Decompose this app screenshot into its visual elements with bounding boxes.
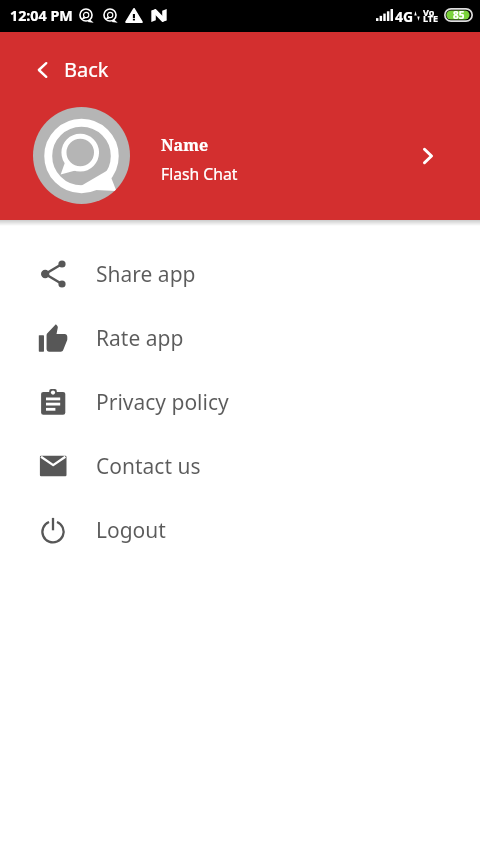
staticText: Flash Chat — [161, 163, 238, 184]
other: Back — [34, 61, 52, 79]
staticText: Name — [161, 134, 209, 156]
button[interactable]: Back — [26, 50, 117, 89]
staticText: Back — [64, 56, 109, 83]
staticText: Vo — [423, 6, 435, 18]
staticText: 4G — [395, 7, 414, 26]
button[interactable]: Name — [0, 107, 480, 204]
staticText: 85 — [453, 8, 465, 22]
button[interactable]: Privacy policy — [0, 370, 480, 434]
staticText: Rate app — [96, 324, 184, 353]
other: Open profile — [420, 148, 436, 164]
staticText: LTE — [423, 12, 439, 24]
staticText: Privacy policy — [96, 388, 229, 417]
staticText: Share app — [96, 260, 196, 289]
staticText: 12:04 PM — [10, 6, 73, 25]
button[interactable]: Contact us — [0, 434, 480, 498]
button[interactable]: Logout — [0, 498, 480, 562]
staticText: Contact us — [96, 452, 201, 481]
button[interactable]: Rate app — [0, 306, 480, 370]
staticText: Logout — [96, 516, 166, 545]
button[interactable]: Share app — [0, 242, 480, 306]
